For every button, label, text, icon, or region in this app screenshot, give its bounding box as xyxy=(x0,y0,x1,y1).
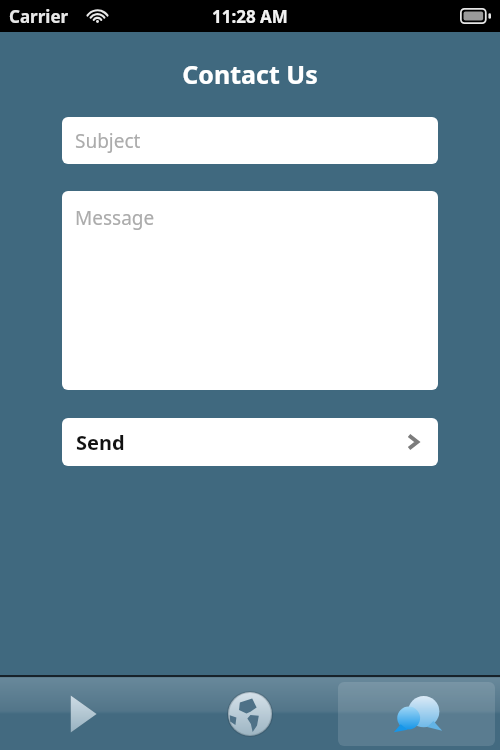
button[interactable]: Browse xyxy=(166,678,333,750)
staticText: Message xyxy=(75,205,155,231)
staticText: Send xyxy=(76,429,125,456)
button[interactable]: Subject xyxy=(62,117,438,164)
button[interactable]: Message xyxy=(62,191,438,390)
staticText: Subject xyxy=(75,128,141,154)
button[interactable]: Play xyxy=(0,678,166,750)
button[interactable]: Send xyxy=(62,418,438,466)
staticText: 11:28 AM xyxy=(212,5,288,28)
staticText: Carrier xyxy=(9,5,69,28)
button[interactable]: Chat xyxy=(333,678,500,750)
staticText: Contact Us xyxy=(182,57,318,91)
